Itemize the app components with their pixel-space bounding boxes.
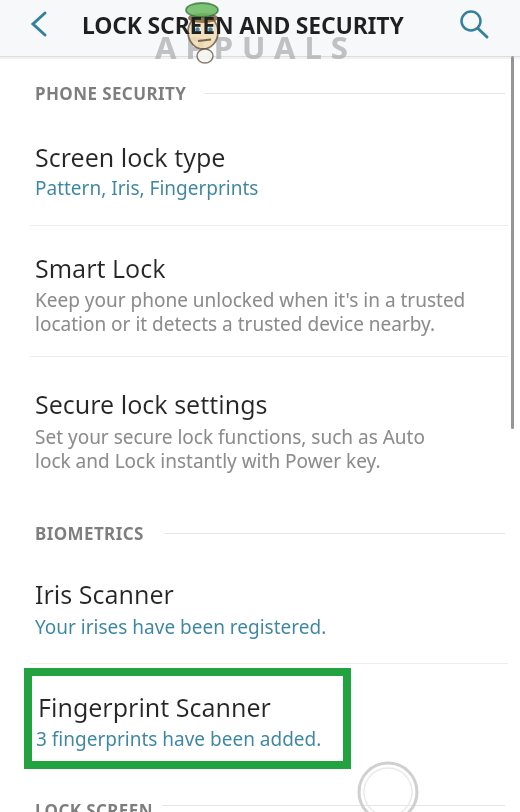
staticText: Fingerprint Scanner (38, 690, 271, 724)
button[interactable] (0, 672, 520, 772)
staticText: Pattern, Iris, Fingerprints (35, 175, 259, 201)
staticText: PHONE SECURITY (35, 82, 187, 105)
button[interactable] (448, 0, 504, 56)
staticText: Smart Lock (35, 251, 166, 285)
button[interactable] (0, 564, 520, 662)
button[interactable] (0, 372, 520, 484)
staticText: Screen lock type (35, 140, 226, 174)
staticText: LOCK SCREEN (35, 799, 153, 812)
button[interactable] (14, 0, 64, 56)
button[interactable] (0, 236, 520, 348)
staticText: Secure lock settings (35, 387, 268, 421)
staticText: 3 fingerprints have been added. (36, 726, 322, 752)
button[interactable] (0, 126, 520, 224)
staticText: location or it detects a trusted device … (35, 311, 436, 337)
staticText: LOCK SCREEN AND SECURITY (82, 9, 404, 40)
staticText: BIOMETRICS (35, 522, 144, 545)
staticText: Keep your phone unlocked when it's in a … (35, 287, 466, 313)
staticText: Set your secure lock functions, such as … (35, 424, 425, 450)
staticText: lock and Lock instantly with Power key. (35, 448, 381, 474)
staticText: Your irises have been registered. (35, 614, 327, 640)
staticText: Iris Scanner (35, 577, 174, 611)
staticText: APPUALS (155, 26, 357, 66)
